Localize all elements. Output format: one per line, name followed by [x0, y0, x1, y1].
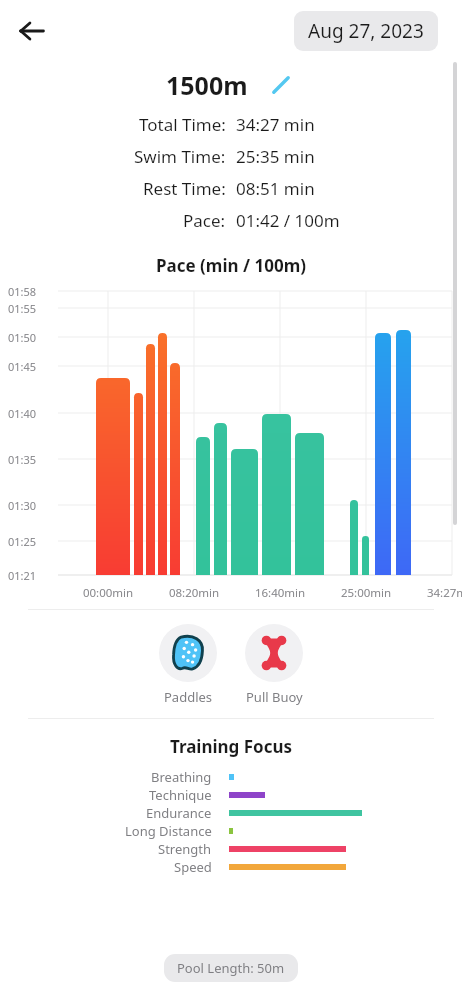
staticText: Aug 27, 2023	[308, 18, 424, 44]
staticText: Technique	[149, 786, 212, 804]
staticText: 25:00min	[329, 585, 403, 601]
button[interactable]: Pull Buoy	[239, 624, 309, 706]
staticText: 25:35 min	[236, 145, 315, 168]
staticText: 34:27 min	[236, 113, 315, 136]
staticText: 01:58	[8, 284, 37, 299]
staticText: Rest Time:	[143, 177, 226, 200]
staticText: Training Focus	[0, 735, 462, 758]
staticText: Swim Time:	[134, 145, 226, 168]
staticText: 08:51 min	[236, 177, 315, 200]
staticText: Pull Buoy	[246, 688, 303, 706]
staticText: 01:55	[8, 301, 37, 316]
staticText: Pace:	[183, 209, 226, 232]
staticText: 01:40	[8, 406, 37, 421]
staticText: Pool Length: 50m	[177, 959, 285, 977]
staticText: 01:30	[8, 498, 37, 513]
staticText: 16:40min	[243, 585, 317, 601]
staticText: 01:45	[8, 359, 37, 374]
button[interactable]: Back	[8, 7, 56, 55]
button[interactable]: Edit distance	[266, 70, 296, 100]
staticText: Long Distance	[125, 822, 212, 840]
staticText: Endurance	[146, 804, 212, 822]
staticText: Pace (min / 100m)	[0, 254, 462, 277]
staticText: 00:00min	[71, 585, 145, 601]
staticText: 1500m	[166, 68, 248, 102]
staticText: Breathing	[151, 768, 212, 786]
staticText: Paddles	[164, 688, 213, 706]
button[interactable]: Aug 27, 2023	[294, 11, 438, 51]
staticText: 01:42 / 100m	[236, 209, 340, 232]
button[interactable]: Paddles	[153, 624, 223, 706]
staticText: Strength	[158, 840, 212, 858]
staticText: 01:35	[8, 452, 37, 467]
staticText: 34:27min	[415, 585, 462, 601]
staticText: Total Time:	[139, 113, 226, 136]
staticText: 08:20min	[157, 585, 231, 601]
staticText: 01:25	[8, 534, 37, 549]
staticText: 01:50	[8, 330, 37, 345]
staticText: Speed	[174, 858, 212, 876]
button[interactable]: Pool Length: 50m	[164, 954, 298, 982]
staticText: 01:21	[8, 568, 37, 583]
